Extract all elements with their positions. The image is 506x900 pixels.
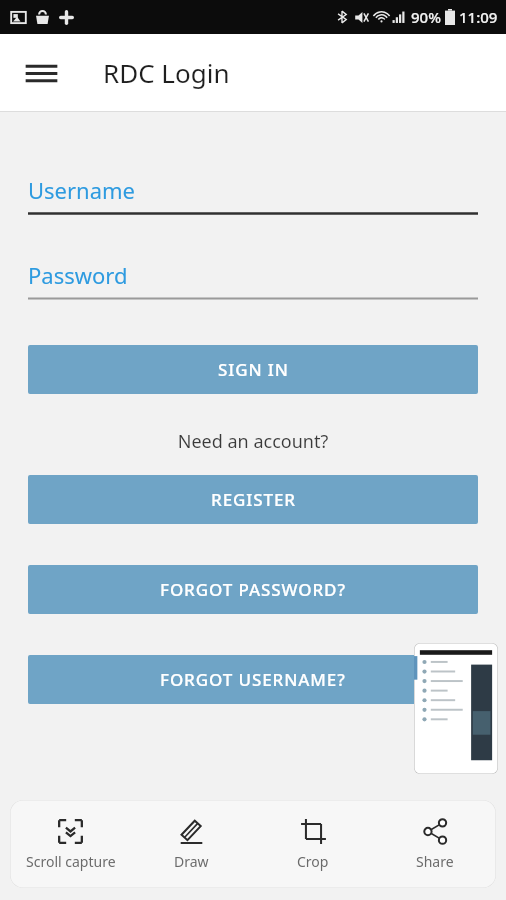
button[interactable]: Username (28, 175, 478, 215)
staticText: Need an account? (0, 429, 506, 454)
staticText: SIGN IN (218, 358, 289, 381)
button[interactable]: Share (374, 812, 496, 877)
staticText: RDC Login (103, 55, 230, 90)
button[interactable]: REGISTER (28, 475, 478, 524)
staticText: Share (416, 852, 454, 871)
button[interactable]: SIGN IN (28, 345, 478, 394)
button[interactable]: Password (28, 260, 478, 300)
staticText: FORGOT PASSWORD? (160, 578, 346, 601)
staticText: 11:09 (459, 7, 498, 27)
button[interactable]: Open navigation menu (13, 45, 69, 101)
button[interactable]: Screenshot preview (414, 643, 498, 774)
staticText: Scroll capture (26, 852, 116, 871)
button[interactable]: FORGOT PASSWORD? (28, 565, 478, 614)
staticText: Crop (297, 852, 329, 871)
staticText: Username (28, 175, 136, 205)
button[interactable]: Draw (131, 812, 252, 877)
staticText: REGISTER (211, 488, 296, 511)
staticText: 90% (411, 7, 441, 27)
staticText: FORGOT USERNAME? (160, 668, 346, 691)
staticText: Draw (174, 852, 209, 871)
button[interactable]: Scroll capture (10, 812, 131, 877)
staticText: Password (28, 260, 128, 290)
button[interactable]: FORGOT USERNAME? (28, 655, 478, 704)
button[interactable]: Crop (252, 812, 374, 877)
